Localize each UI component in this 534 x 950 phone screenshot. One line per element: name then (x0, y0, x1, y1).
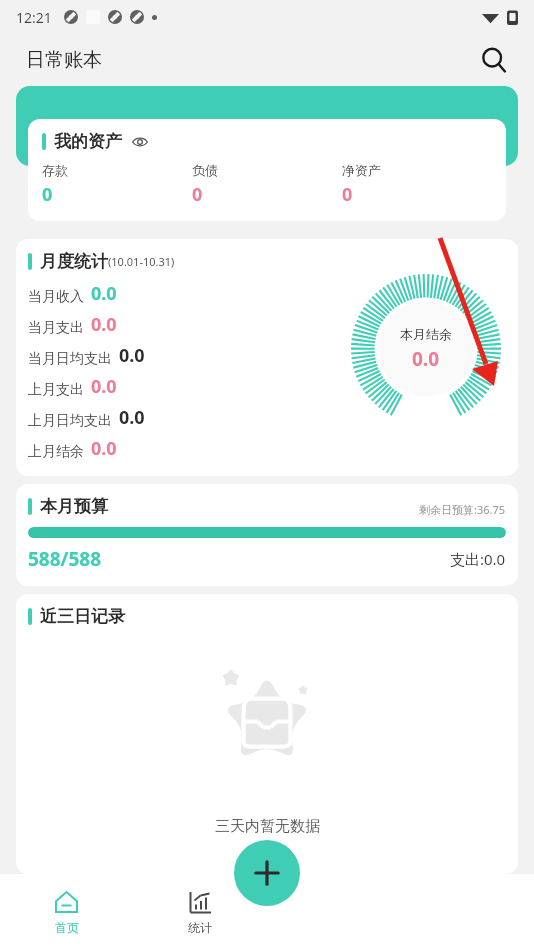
staticText: 0 (342, 182, 353, 207)
button[interactable]: 我的资产 (28, 119, 506, 221)
staticText: 0.0 (91, 374, 117, 399)
staticText: 0 (192, 182, 203, 207)
button[interactable]: 本月预算 (16, 484, 518, 586)
staticText: 0 (42, 182, 53, 207)
staticText: 当月收入 (28, 288, 84, 306)
staticText: 上月结余 (28, 443, 84, 461)
staticText: 0.0 (119, 405, 145, 430)
staticText: 0.0 (91, 436, 117, 461)
button[interactable]: 首页 (0, 874, 133, 950)
staticText: 上月日均支出 (28, 412, 112, 430)
staticText: 588/588 (28, 546, 450, 572)
staticText: 近三日记录 (40, 606, 125, 627)
staticText: 三天内暂无数据 (215, 817, 320, 836)
staticText: (10.01-10.31) (108, 254, 175, 269)
staticText: 净资产 (342, 162, 381, 178)
staticText: 本月结余 (400, 326, 452, 342)
staticText: 0.0 (91, 281, 117, 306)
staticText: 当月支出 (28, 319, 84, 337)
staticText: 我的资产 (54, 131, 122, 152)
button[interactable]: Add record (234, 840, 300, 906)
staticText: 负债 (192, 162, 218, 178)
button[interactable]: 月度统计 (16, 239, 518, 476)
staticText: 当月日均支出 (28, 350, 112, 368)
staticText: 本月预算 (40, 496, 108, 517)
button[interactable]: Toggle visibility (132, 134, 148, 150)
button[interactable]: Search (474, 40, 514, 80)
button[interactable]: 近三日记录 (16, 594, 518, 874)
staticText: 日常账本 (26, 48, 102, 72)
staticText: 存款 (42, 162, 68, 178)
staticText: 统计 (188, 920, 212, 935)
staticText: 支出:0.0 (450, 549, 506, 569)
button[interactable]: 统计 (133, 874, 267, 950)
staticText: 0.0 (119, 343, 145, 368)
staticText: 0.0 (412, 346, 440, 372)
staticText: 12:21 (16, 8, 52, 27)
staticText: 上月支出 (28, 381, 84, 399)
staticText: 月度统计 (40, 251, 108, 272)
staticText: 0.0 (91, 312, 117, 337)
staticText: 剩余日预算:36.75 (419, 502, 506, 517)
staticText: 首页 (55, 920, 79, 935)
